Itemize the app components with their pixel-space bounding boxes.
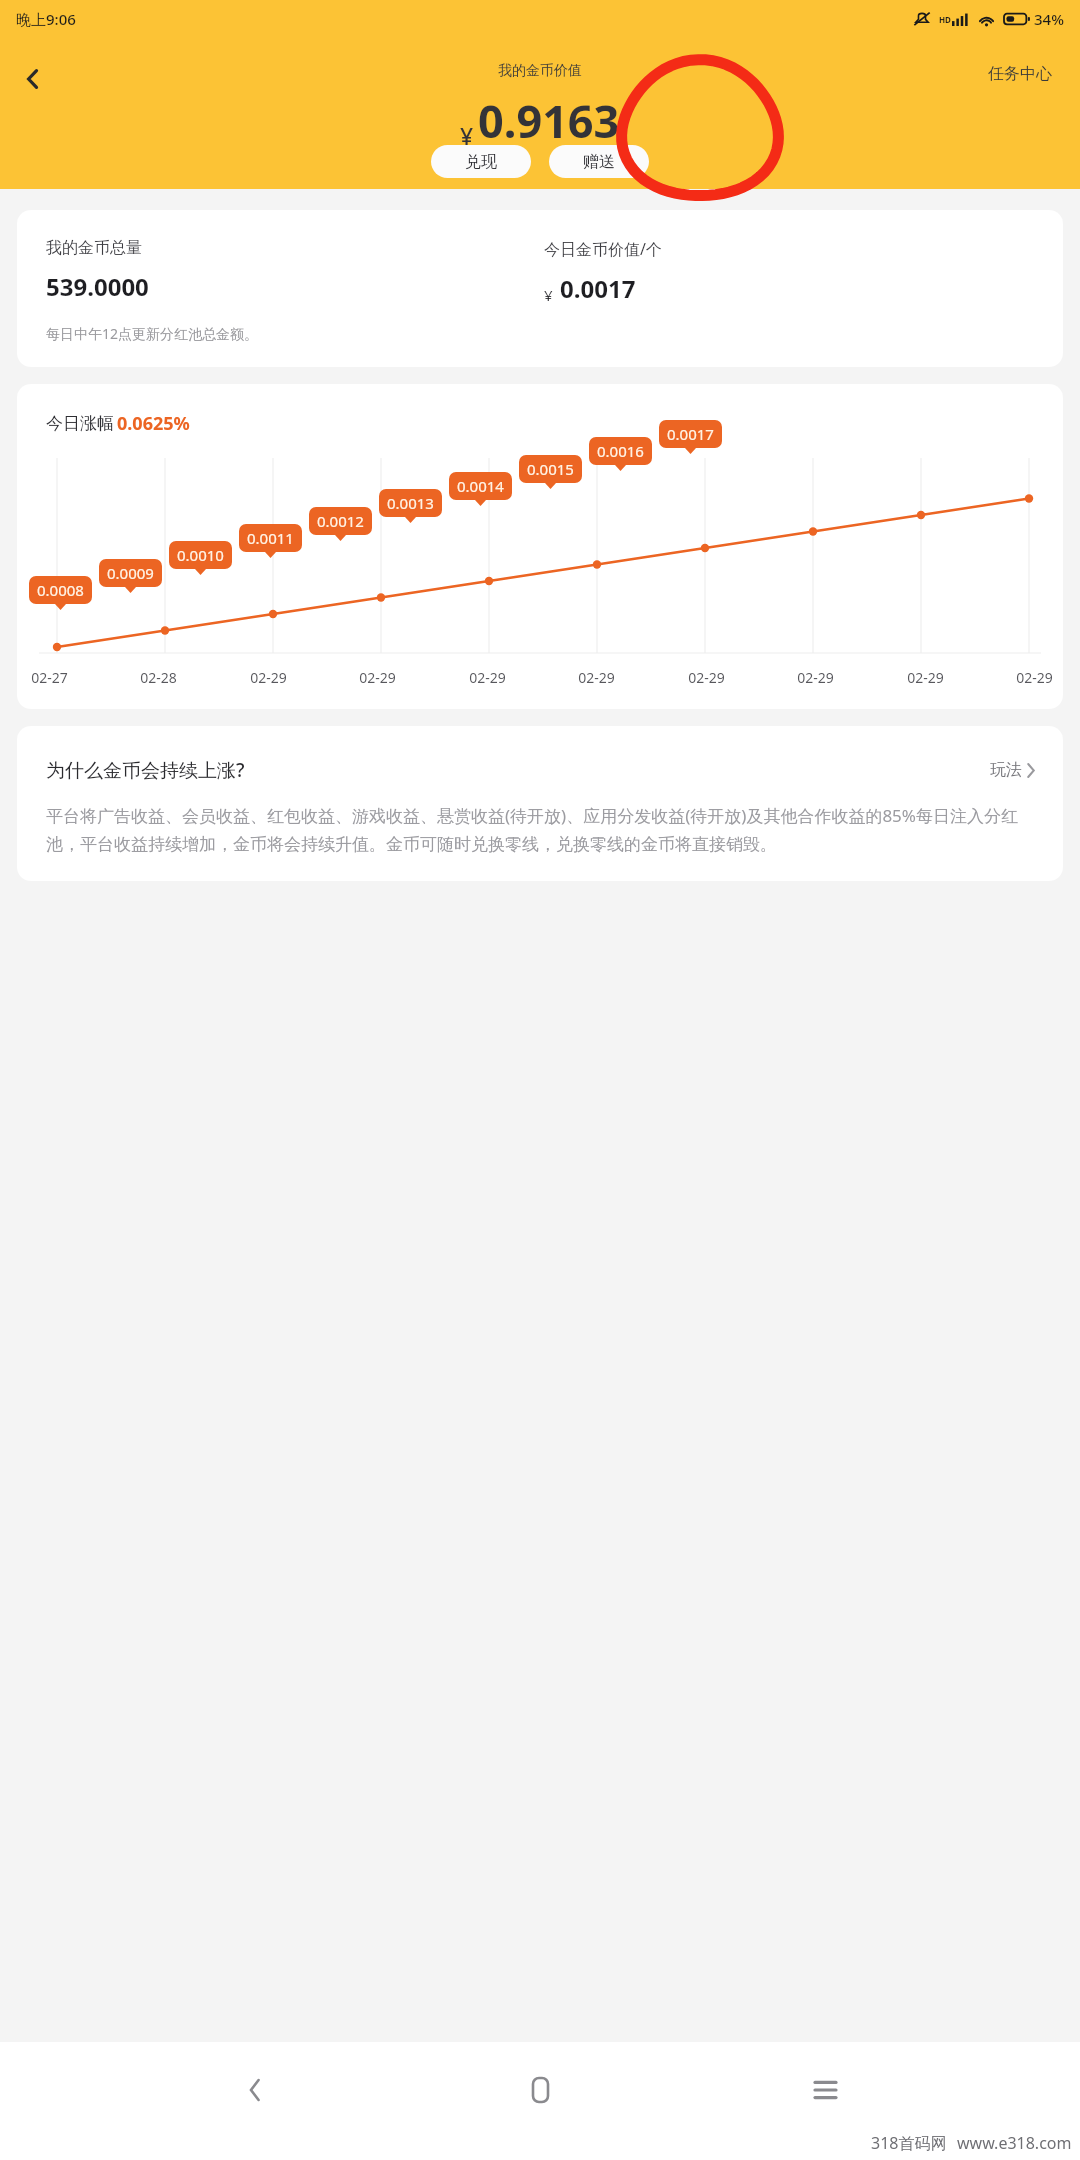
staticText: 02-27: [31, 668, 68, 687]
button[interactable]: 任务中心: [980, 58, 1060, 90]
staticText: 我的金币价值: [498, 62, 582, 80]
staticText: 0.0014: [457, 476, 504, 496]
staticText: 0.0010: [177, 545, 224, 565]
staticText: 今日金币价值/个: [544, 238, 662, 260]
staticText: 赠送: [583, 152, 615, 172]
staticText: 02-29: [688, 668, 725, 687]
button[interactable]: 赠送: [549, 145, 649, 178]
button[interactable]: Back: [225, 2060, 285, 2120]
staticText: 02-29: [250, 668, 287, 687]
staticText: ¥: [460, 120, 474, 151]
button[interactable]: 兑现: [431, 145, 531, 178]
staticText: 02-29: [578, 668, 615, 687]
staticText: 0.0015: [527, 459, 574, 479]
staticText: 0.0017: [667, 424, 714, 444]
button[interactable]: Back: [10, 56, 56, 102]
staticText: 0.0008: [37, 580, 84, 600]
staticText: 0.0016: [597, 441, 644, 461]
staticText: 02-29: [907, 668, 944, 687]
button[interactable]: 玩法: [986, 756, 1039, 784]
staticText: 02-29: [797, 668, 834, 687]
staticText: HD: [939, 14, 951, 25]
staticText: 0.0017: [560, 272, 636, 305]
staticText: 0.0625%: [117, 411, 190, 436]
staticText: 02-29: [359, 668, 396, 687]
staticText: 玩法: [990, 760, 1022, 780]
staticText: 02-29: [469, 668, 506, 687]
staticText: 318首码网: [871, 2132, 947, 2154]
staticText: ¥: [544, 285, 553, 305]
staticText: 02-28: [140, 668, 177, 687]
staticText: 我的金币总量: [46, 238, 142, 258]
button[interactable]: 为什么金币会持续上涨?: [17, 726, 1063, 881]
staticText: www.e318.com: [957, 2132, 1072, 2154]
staticText: 02-29: [1016, 668, 1053, 687]
button[interactable]: Recent apps: [795, 2060, 855, 2120]
staticText: 0.9163: [478, 90, 620, 151]
staticText: 34%: [1034, 9, 1064, 29]
staticText: 今日涨幅: [46, 413, 114, 434]
staticText: 任务中心: [988, 64, 1052, 84]
staticText: 每日中午12点更新分红池总金额。: [46, 324, 259, 343]
button[interactable]: 我的金币总量: [17, 210, 1063, 367]
staticText: 兑现: [465, 152, 497, 172]
staticText: 0.0013: [387, 493, 434, 513]
staticText: 0.0009: [107, 563, 154, 583]
staticText: 平台将广告收益、会员收益、红包收益、游戏收益、悬赏收益(待开放)、应用分发收益(…: [46, 804, 1039, 855]
staticText: 晚上9:06: [16, 9, 76, 29]
staticText: 0.0012: [317, 511, 364, 531]
button[interactable]: Home: [510, 2060, 570, 2120]
staticText: 0.0011: [247, 528, 294, 548]
staticText: 为什么金币会持续上涨?: [46, 757, 245, 783]
staticText: 539.0000: [46, 270, 149, 303]
button[interactable]: 今日涨幅: [17, 384, 1063, 709]
